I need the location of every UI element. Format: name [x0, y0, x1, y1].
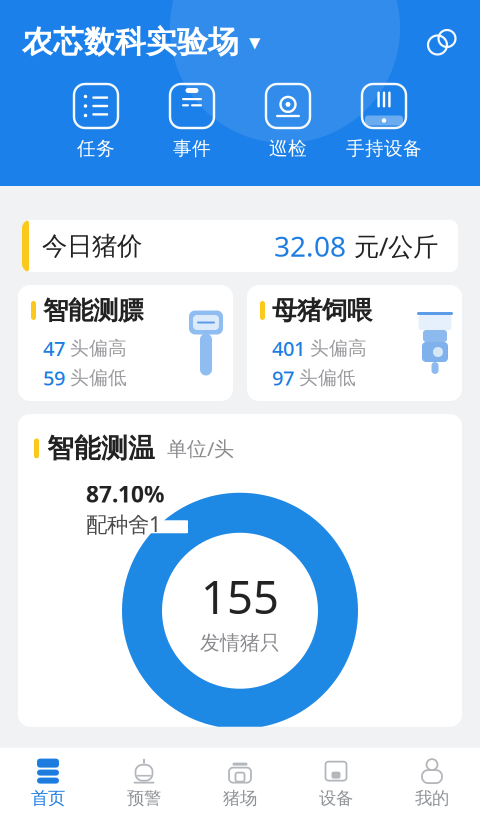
button[interactable]: 手持设备 — [336, 84, 432, 160]
button[interactable]: 农芯数科实验场 — [22, 23, 260, 61]
staticText: 预警 — [127, 788, 161, 809]
staticText: 我的 — [415, 788, 449, 809]
staticText: 87.10% — [86, 479, 164, 509]
button[interactable]: 预警 — [96, 751, 192, 817]
button[interactable]: 今日猪价 — [22, 220, 458, 272]
button[interactable]: 消息 — [420, 22, 464, 62]
button[interactable]: 母猪饲喂 — [247, 285, 462, 401]
staticText: 单位/头 — [167, 435, 234, 462]
staticText: 401 — [272, 335, 305, 362]
staticText: 猪场 — [223, 788, 257, 809]
staticText: 47 — [43, 335, 65, 362]
button[interactable]: 我的 — [384, 751, 480, 817]
staticText: 今日猪价 — [42, 230, 142, 261]
button[interactable]: 设备 — [288, 751, 384, 817]
staticText: 设备 — [319, 788, 353, 809]
staticText: 头偏低 — [299, 366, 356, 389]
staticText: 头偏高 — [70, 337, 127, 360]
button[interactable]: 巡检 — [240, 84, 336, 160]
staticText: 头偏高 — [310, 337, 367, 360]
staticText: 元/公斤 — [354, 229, 438, 263]
staticText: 59 — [43, 365, 65, 391]
staticText: 智能测温 — [47, 432, 155, 465]
staticText: 事件 — [173, 137, 211, 160]
button[interactable]: 智能测膘 — [18, 285, 233, 401]
staticText: 农芯数科实验场 — [22, 23, 239, 61]
staticText: 155 — [201, 566, 279, 627]
staticText: 配种舍1 — [86, 510, 161, 538]
staticText: 发情猪只 — [200, 631, 280, 655]
staticText: ▾ — [249, 29, 260, 55]
staticText: 母猪饲喂 — [272, 295, 372, 326]
staticText: 任务 — [77, 137, 115, 160]
button[interactable]: 猪场 — [192, 751, 288, 817]
staticText: 97 — [272, 365, 294, 391]
button[interactable]: 首页 — [0, 751, 96, 817]
staticText: 头偏低 — [70, 366, 127, 389]
button[interactable]: 任务 — [48, 84, 144, 160]
staticText: 巡检 — [269, 137, 307, 160]
button[interactable]: 事件 — [144, 84, 240, 160]
staticText: 智能测膘 — [43, 295, 143, 326]
staticText: 手持设备 — [346, 137, 422, 160]
staticText: 首页 — [31, 788, 65, 809]
staticText: 32.08 — [274, 227, 346, 265]
